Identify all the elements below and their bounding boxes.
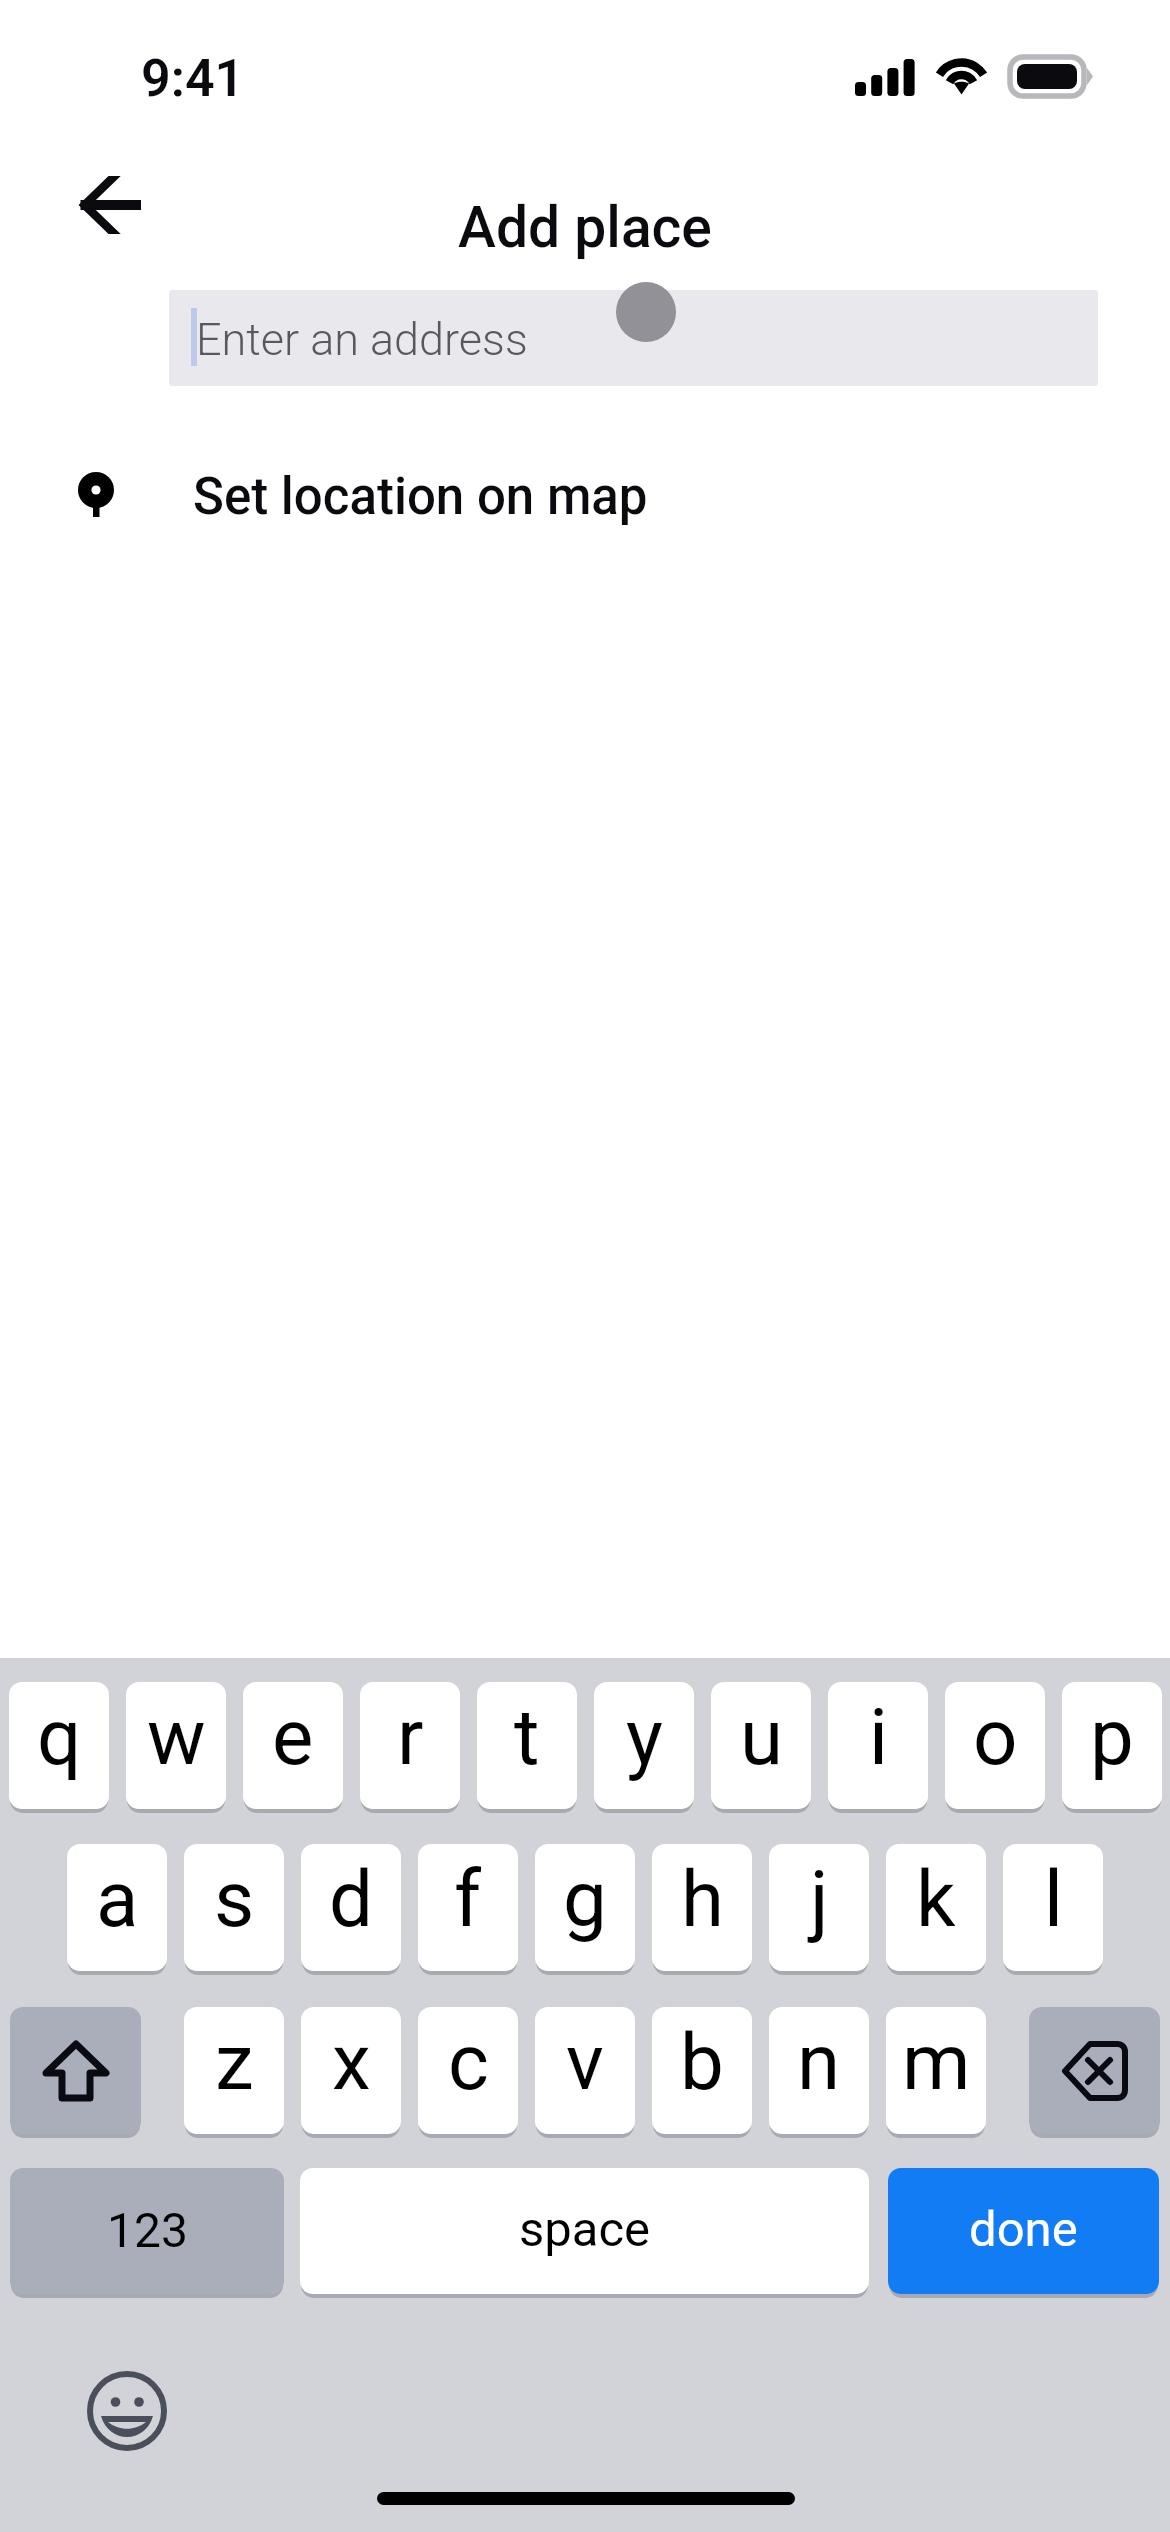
staticText: w — [147, 1692, 206, 1783]
staticText: g — [563, 1854, 607, 1945]
button[interactable]: i — [828, 1682, 928, 1809]
button[interactable]: p — [1062, 1682, 1162, 1809]
button[interactable]: g — [535, 1844, 635, 1971]
staticText: n — [797, 2017, 841, 2108]
button[interactable]: f — [418, 1844, 518, 1971]
staticText: u — [740, 1692, 783, 1783]
button[interactable]: x — [301, 2007, 401, 2134]
button[interactable]: s — [184, 1844, 284, 1971]
staticText: x — [332, 2017, 371, 2108]
button[interactable]: Set location on map — [0, 440, 1170, 550]
button[interactable]: w — [126, 1682, 226, 1809]
button[interactable]: k — [886, 1844, 986, 1971]
button[interactable]: u — [711, 1682, 811, 1809]
button[interactable]: v — [535, 2007, 635, 2134]
button[interactable]: Enter an address — [169, 290, 1098, 386]
staticText: t — [514, 1692, 540, 1783]
button[interactable]: y — [594, 1682, 694, 1809]
staticText: a — [96, 1854, 139, 1945]
staticText: q — [37, 1692, 82, 1783]
staticText: c — [448, 2017, 489, 2108]
staticText: i — [869, 1692, 888, 1783]
button[interactable]: o — [945, 1682, 1045, 1809]
staticText: m — [902, 2017, 971, 2108]
staticText: e — [272, 1692, 314, 1783]
staticText: r — [397, 1692, 424, 1783]
staticText: z — [215, 2017, 254, 2108]
staticText: 123 — [107, 2202, 188, 2258]
button[interactable]: m — [886, 2007, 986, 2134]
staticText: Add place — [0, 194, 1170, 261]
staticText: l — [1044, 1854, 1063, 1945]
staticText: o — [973, 1692, 1018, 1783]
staticText: b — [680, 2017, 724, 2108]
staticText: Enter an address — [196, 313, 528, 366]
button[interactable]: j — [769, 1844, 869, 1971]
button[interactable]: q — [9, 1682, 109, 1809]
staticText: f — [454, 1854, 482, 1945]
button[interactable]: Backspace — [1029, 2007, 1160, 2134]
staticText: 9:41 — [141, 48, 245, 109]
staticText: Set location on map — [193, 467, 648, 527]
staticText: k — [916, 1854, 956, 1945]
button[interactable]: Shift — [10, 2007, 141, 2134]
staticText: p — [1090, 1692, 1134, 1783]
staticText: d — [329, 1854, 373, 1945]
staticText: j — [810, 1854, 829, 1945]
button[interactable]: d — [301, 1844, 401, 1971]
button[interactable]: e — [243, 1682, 343, 1809]
staticText: s — [214, 1854, 255, 1945]
button[interactable]: z — [184, 2007, 284, 2134]
button[interactable]: b — [652, 2007, 752, 2134]
button[interactable]: Emoji keyboard — [87, 2371, 167, 2451]
button[interactable]: l — [1003, 1844, 1103, 1971]
staticText: v — [566, 2017, 604, 2108]
button[interactable]: space — [300, 2168, 869, 2294]
button[interactable]: n — [769, 2007, 869, 2134]
button[interactable]: Back — [48, 143, 172, 267]
button[interactable]: t — [477, 1682, 577, 1809]
button[interactable]: r — [360, 1682, 460, 1809]
staticText: space — [519, 2201, 651, 2258]
button[interactable]: a — [67, 1844, 167, 1971]
button[interactable]: h — [652, 1844, 752, 1971]
button[interactable]: c — [418, 2007, 518, 2134]
staticText: y — [626, 1692, 663, 1783]
button[interactable]: done — [888, 2168, 1159, 2294]
staticText: done — [969, 2201, 1078, 2258]
staticText: h — [681, 1854, 724, 1945]
button[interactable]: 123 — [10, 2168, 284, 2294]
